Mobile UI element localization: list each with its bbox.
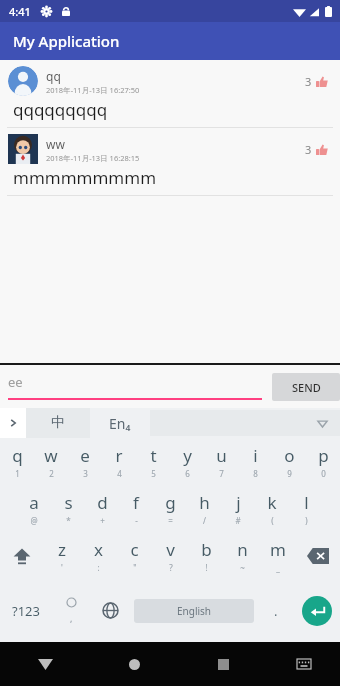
button[interactable]: i bbox=[238, 438, 272, 485]
staticText: 8 bbox=[253, 468, 258, 479]
button[interactable]: q bbox=[0, 438, 34, 485]
staticText: b bbox=[201, 538, 212, 561]
staticText: 2 bbox=[49, 468, 54, 479]
staticText: 4:41 bbox=[9, 4, 31, 19]
button[interactable]: Shift bbox=[0, 532, 44, 579]
staticText: d bbox=[97, 491, 108, 514]
button[interactable]: n bbox=[224, 532, 260, 579]
staticText: 2018年-11月-13日 16:28:15 bbox=[46, 153, 140, 163]
staticText: ) bbox=[305, 515, 308, 526]
staticText: r bbox=[115, 444, 123, 467]
staticText: v bbox=[166, 538, 175, 561]
staticText: English bbox=[177, 604, 212, 618]
button[interactable]: Backspace bbox=[296, 532, 340, 579]
button[interactable]: 3 bbox=[303, 140, 330, 159]
button[interactable]: Change language bbox=[90, 579, 130, 642]
button[interactable]: m bbox=[260, 532, 296, 579]
button[interactable]: f bbox=[119, 485, 153, 532]
button[interactable]: SEND bbox=[272, 373, 340, 401]
staticText: t bbox=[150, 444, 157, 467]
staticText: q bbox=[12, 444, 23, 467]
staticText: ~ bbox=[240, 562, 245, 573]
button[interactable]: o bbox=[272, 438, 306, 485]
staticText: ww bbox=[46, 136, 65, 152]
button[interactable]: x bbox=[80, 532, 116, 579]
button[interactable]: ?123 bbox=[0, 579, 52, 642]
other: Like bbox=[316, 144, 328, 156]
staticText: + bbox=[100, 515, 105, 526]
staticText: ? bbox=[169, 562, 173, 573]
button[interactable]: 3 bbox=[303, 72, 330, 91]
other: Like bbox=[316, 76, 328, 88]
button[interactable]: English bbox=[134, 599, 254, 623]
button[interactable]: More bbox=[150, 410, 340, 436]
staticText: 1 bbox=[15, 468, 20, 479]
staticText: . bbox=[274, 602, 278, 620]
staticText: k bbox=[267, 491, 277, 514]
button[interactable]: c bbox=[116, 532, 152, 579]
staticText: w bbox=[44, 444, 58, 467]
staticText: ( bbox=[271, 515, 274, 526]
staticText: 3 bbox=[83, 468, 88, 479]
staticText: 2018年-11月-13日 16:27:50 bbox=[46, 85, 140, 95]
staticText: = bbox=[168, 515, 173, 526]
staticText: / bbox=[203, 515, 206, 526]
button[interactable]: Home bbox=[90, 642, 179, 686]
button[interactable]: s bbox=[51, 485, 85, 532]
staticText: En₄ bbox=[109, 414, 131, 433]
button[interactable]: k bbox=[255, 485, 289, 532]
button[interactable]: b bbox=[188, 532, 224, 579]
button[interactable]: Enter bbox=[294, 579, 340, 642]
staticText: u bbox=[216, 444, 227, 467]
button[interactable]: t bbox=[136, 438, 170, 485]
staticText: 3 bbox=[305, 142, 312, 157]
staticText: e bbox=[80, 444, 90, 467]
button[interactable]: Recents bbox=[179, 642, 268, 686]
button[interactable]: u bbox=[204, 438, 238, 485]
button[interactable]: , bbox=[52, 579, 90, 642]
button[interactable]: z bbox=[44, 532, 80, 579]
button[interactable]: j bbox=[221, 485, 255, 532]
button[interactable]: En₄ bbox=[90, 408, 150, 438]
staticText: " bbox=[133, 562, 137, 573]
staticText: @ bbox=[30, 515, 38, 526]
button[interactable]: h bbox=[187, 485, 221, 532]
button[interactable]: w bbox=[34, 438, 68, 485]
button[interactable]: Expand bbox=[0, 408, 26, 438]
button[interactable]: p bbox=[306, 438, 340, 485]
button[interactable]: . bbox=[258, 579, 294, 642]
staticText: SEND bbox=[292, 380, 321, 395]
button[interactable]: 中 bbox=[26, 408, 90, 438]
staticText: n bbox=[237, 538, 248, 561]
button[interactable]: ee bbox=[8, 373, 262, 400]
button[interactable]: Back bbox=[0, 642, 90, 686]
staticText: _ bbox=[276, 562, 280, 573]
staticText: a bbox=[29, 491, 39, 514]
button[interactable]: d bbox=[85, 485, 119, 532]
staticText: My Application bbox=[13, 31, 120, 51]
staticText: qq bbox=[46, 68, 61, 84]
staticText: ee bbox=[8, 373, 23, 391]
button[interactable]: v bbox=[152, 532, 188, 579]
staticText: y bbox=[183, 444, 192, 467]
button[interactable]: a bbox=[17, 485, 51, 532]
staticText: 7 bbox=[219, 468, 224, 479]
button[interactable]: Keyboard bbox=[268, 642, 340, 686]
staticText: 中 bbox=[51, 414, 65, 432]
button[interactable]: g bbox=[153, 485, 187, 532]
staticText: - bbox=[135, 515, 138, 526]
button[interactable]: r bbox=[102, 438, 136, 485]
staticText: s bbox=[64, 491, 73, 514]
staticText: : bbox=[97, 562, 100, 573]
button[interactable]: l bbox=[289, 485, 323, 532]
button[interactable]: qq bbox=[0, 60, 340, 128]
staticText: m bbox=[270, 538, 286, 561]
staticText: ' bbox=[61, 562, 63, 573]
staticText: i bbox=[253, 444, 258, 467]
staticText: h bbox=[199, 491, 210, 514]
button[interactable]: e bbox=[68, 438, 102, 485]
button[interactable]: y bbox=[170, 438, 204, 485]
staticText: mmmmmmmmm bbox=[13, 166, 157, 189]
staticText: o bbox=[284, 444, 295, 467]
button[interactable]: ww bbox=[0, 128, 340, 196]
